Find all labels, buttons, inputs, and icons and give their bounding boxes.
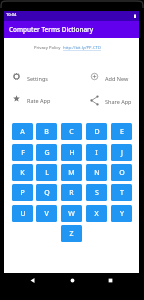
staticText: J (121, 148, 123, 158)
staticText: N (94, 168, 100, 178)
button[interactable]: N (86, 164, 107, 181)
button[interactable]: X (86, 205, 107, 222)
staticText: Q (44, 188, 50, 198)
staticText: K (20, 168, 25, 178)
staticText: H (69, 148, 75, 158)
staticText: U (20, 209, 26, 219)
button[interactable]: E (111, 123, 132, 140)
button[interactable]: O (111, 164, 132, 181)
button[interactable]: R (61, 184, 82, 201)
button[interactable]: T (111, 184, 132, 201)
button[interactable]: Y (111, 205, 132, 222)
button[interactable]: Computer Terms Dictionary (4, 21, 139, 38)
button[interactable]: C (61, 123, 82, 140)
button[interactable]: Recents (106, 276, 115, 285)
button[interactable]: D (86, 123, 107, 140)
staticText: S (95, 188, 99, 198)
staticText: V (44, 209, 49, 219)
staticText: E (120, 127, 124, 137)
button[interactable]: Rate App (8, 89, 53, 107)
staticText: L (45, 168, 49, 178)
staticText: P (20, 188, 25, 198)
button[interactable]: U (12, 205, 33, 222)
button[interactable]: http://bit.ly/PP-CTD (63, 45, 101, 51)
button[interactable]: Settings (8, 67, 50, 85)
staticText: W (68, 209, 75, 219)
button[interactable]: K (12, 164, 33, 181)
staticText: A (20, 127, 25, 137)
button[interactable]: B (36, 123, 57, 140)
button[interactable]: F (12, 144, 33, 161)
staticText: D (94, 127, 100, 137)
button[interactable]: Home (68, 276, 77, 285)
button[interactable]: G (36, 144, 57, 161)
staticText: C (69, 127, 74, 137)
button[interactable]: I (86, 144, 107, 161)
staticText: Z (69, 229, 74, 239)
staticText: I (95, 148, 98, 158)
button[interactable]: P (12, 184, 33, 201)
staticText: Rate App (27, 97, 51, 104)
staticText: X (94, 209, 99, 219)
button[interactable]: M (61, 164, 82, 181)
button[interactable]: W (61, 205, 82, 222)
staticText: F (21, 148, 25, 158)
button[interactable]: L (36, 164, 57, 181)
staticText: 10:04 (6, 12, 17, 17)
button[interactable]: Q (36, 184, 57, 201)
button[interactable]: V (36, 205, 57, 222)
button[interactable]: Back (28, 276, 37, 285)
staticText: Privacy Policy (34, 45, 61, 51)
button[interactable]: Share App (86, 91, 134, 109)
staticText: Share App (105, 98, 132, 105)
button[interactable]: A (12, 123, 33, 140)
staticText: Y (120, 209, 124, 219)
button[interactable]: S (86, 184, 107, 201)
button[interactable]: H (61, 144, 82, 161)
staticText: T (120, 188, 124, 198)
staticText: O (119, 168, 125, 178)
staticText: Computer Terms Dictionary (9, 25, 94, 34)
button[interactable]: J (111, 144, 132, 161)
button[interactable]: Add New (86, 67, 131, 85)
button[interactable]: Z (61, 225, 82, 242)
staticText: B (44, 127, 49, 137)
staticText: R (69, 188, 74, 198)
staticText: M (68, 168, 75, 178)
staticText: G (44, 148, 50, 158)
staticText: Settings (27, 75, 48, 82)
staticText: Add New (105, 75, 129, 82)
